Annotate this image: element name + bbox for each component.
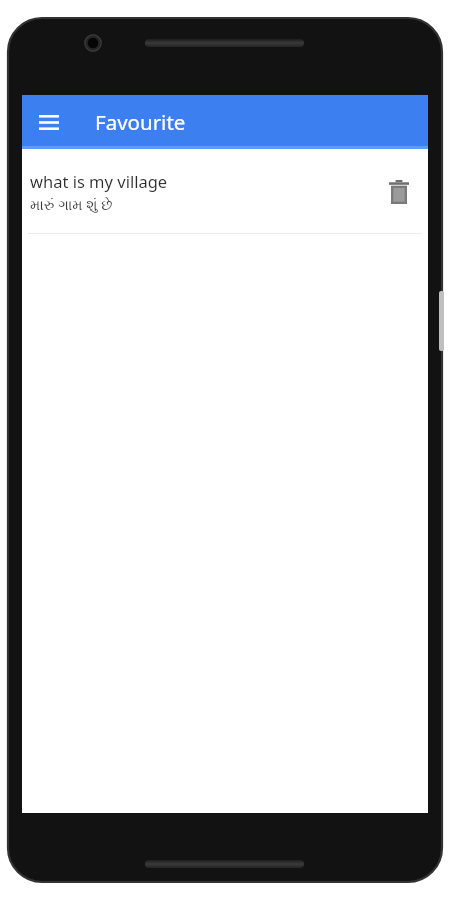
staticText: Favourite xyxy=(95,108,186,136)
staticText: what is my village xyxy=(30,170,168,192)
staticText: મારું ગામ શું છે xyxy=(30,194,113,214)
button[interactable]: Open navigation menu xyxy=(25,98,73,146)
button[interactable]: Delete xyxy=(376,169,422,215)
button[interactable]: what is my village xyxy=(22,149,428,234)
